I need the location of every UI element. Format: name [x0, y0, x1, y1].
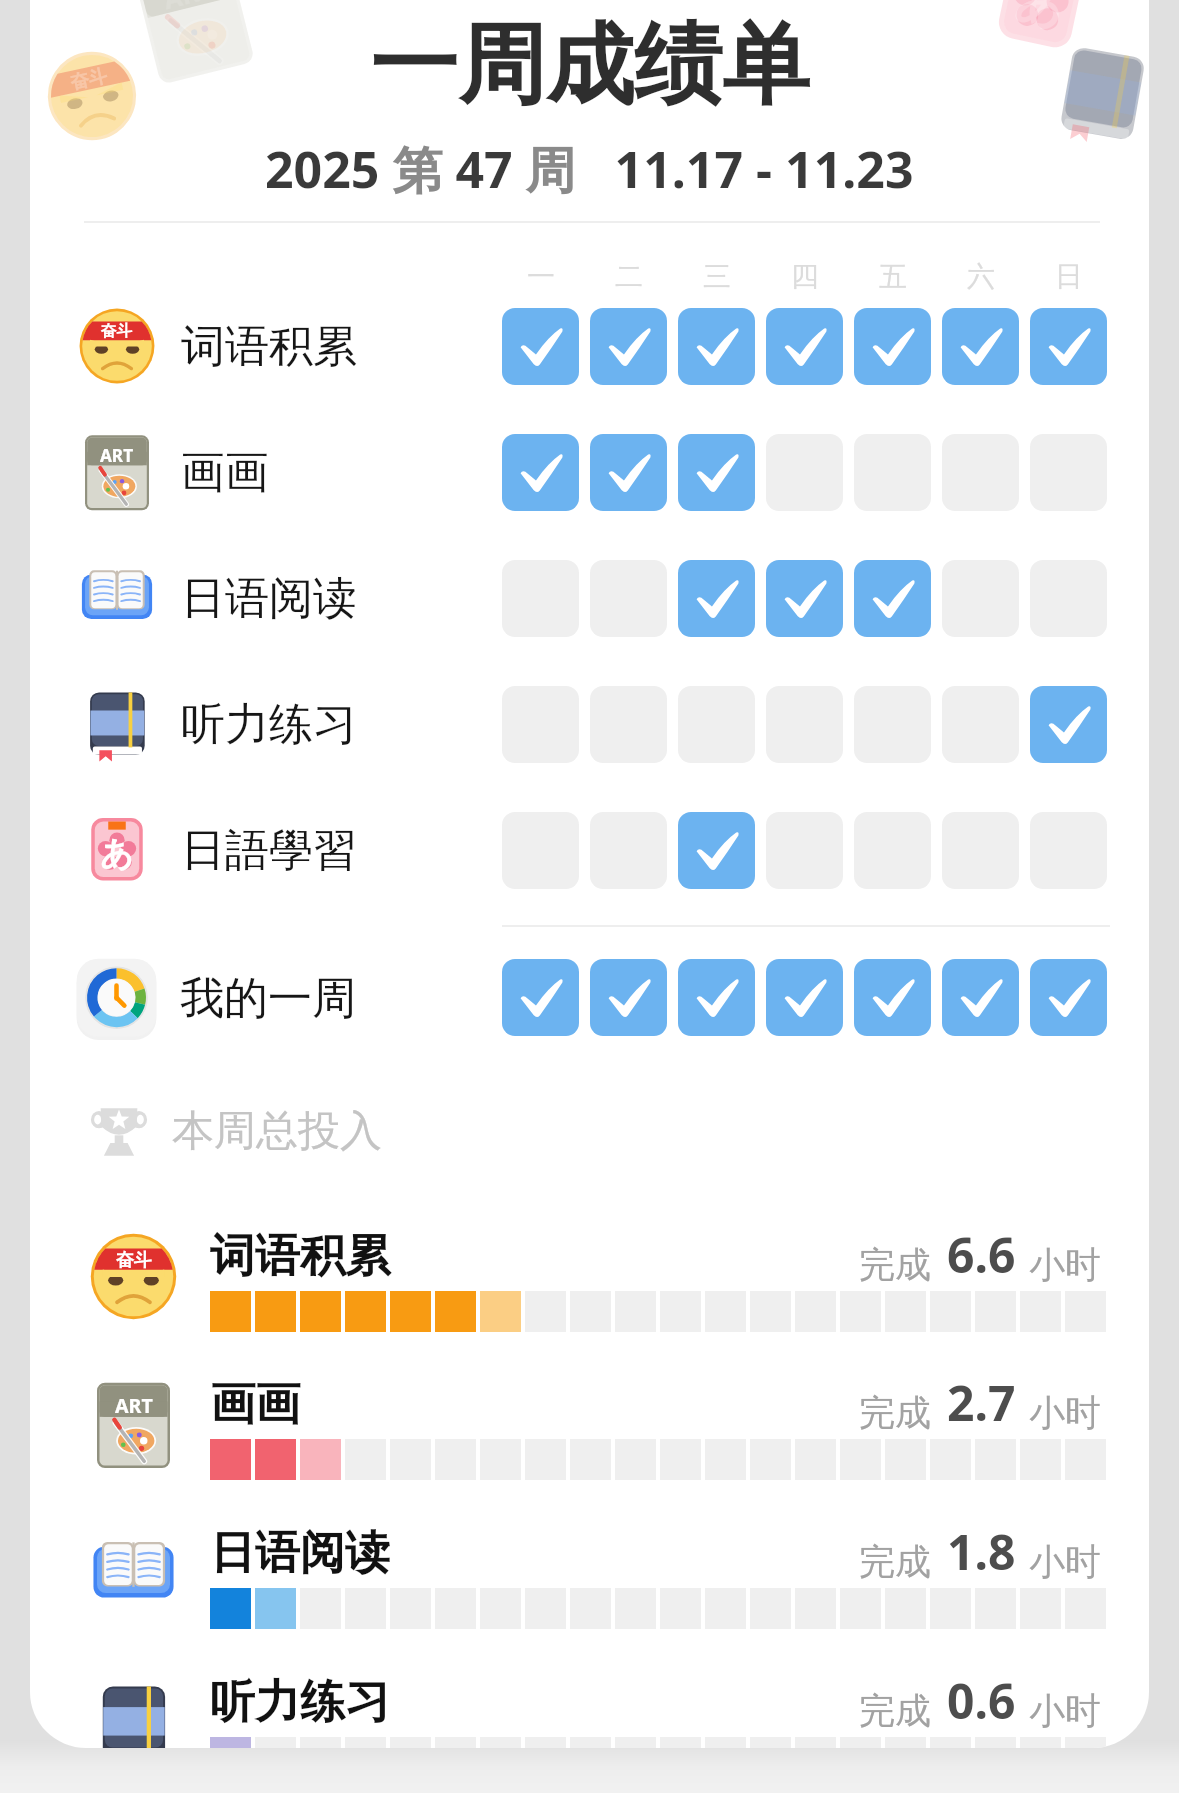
button[interactable]: 听力练习 完成 0.6 小时 [78, 1663, 1131, 1748]
button[interactable]: Completed [678, 308, 755, 385]
button[interactable]: Completed [1030, 959, 1107, 1036]
staticText: ART [115, 1392, 153, 1419]
button[interactable]: Completed [854, 959, 931, 1036]
staticText: 完成 [859, 1539, 931, 1584]
button[interactable]: Completed [766, 959, 843, 1036]
button[interactable]: 画画 完成 2.7 小时 [78, 1365, 1131, 1497]
staticText: ART [160, 0, 217, 16]
button[interactable]: 词语积累 [30, 283, 1149, 409]
button[interactable]: Completed [590, 959, 667, 1036]
staticText: 词语积累 [181, 319, 357, 374]
staticText: 2.7 [947, 1370, 1016, 1435]
staticText: 完成 [859, 1688, 931, 1733]
staticText: 完成 [859, 1390, 931, 1435]
button[interactable]: Completed [942, 959, 1019, 1036]
button[interactable]: 画画 [30, 409, 1149, 535]
button[interactable]: Completed [502, 308, 579, 385]
staticText: 奋斗 [116, 1249, 152, 1271]
staticText: あ [100, 833, 134, 874]
button[interactable]: Completed [854, 308, 931, 385]
staticText: 画画 [181, 445, 269, 500]
button[interactable]: Completed [502, 434, 579, 511]
staticText: 小时 [1029, 1390, 1101, 1435]
staticText: 我的一周 [180, 971, 356, 1026]
staticText: 词语积累 [210, 1228, 390, 1285]
button[interactable]: Completed [678, 959, 755, 1036]
staticText: 听力练习 [181, 697, 357, 752]
button[interactable]: 日语阅读 [30, 535, 1149, 661]
button[interactable]: Completed [678, 434, 755, 511]
button[interactable]: Completed [1030, 308, 1107, 385]
button[interactable]: 本周总投入 [86, 1098, 382, 1164]
staticText: 日語學習 [181, 823, 357, 878]
staticText: 小时 [1029, 1242, 1101, 1287]
staticText: 一 [527, 259, 555, 294]
staticText: 听力练习 [210, 1674, 390, 1731]
staticText: 小时 [1029, 1688, 1101, 1733]
staticText: 四 [791, 259, 819, 294]
staticText: 画画 [210, 1376, 300, 1433]
button[interactable]: 日语阅读 完成 1.8 小时 [78, 1514, 1131, 1646]
staticText: 三 [703, 259, 731, 294]
staticText: 1.8 [947, 1519, 1016, 1584]
button[interactable]: Completed [590, 434, 667, 511]
button[interactable]: Completed [766, 308, 843, 385]
staticText: 完成 [859, 1242, 931, 1287]
staticText: 6.6 [947, 1222, 1016, 1287]
staticText: 奋斗 [101, 321, 133, 341]
button[interactable]: Completed [1030, 686, 1107, 763]
button[interactable]: Completed [678, 560, 755, 637]
staticText: 日语阅读 [181, 571, 357, 626]
button[interactable]: Completed [590, 308, 667, 385]
staticText: 0.6 [947, 1668, 1016, 1733]
staticText: 日语阅读 [210, 1525, 390, 1582]
staticText: 二 [615, 259, 643, 294]
staticText: 一周成绩单 [370, 10, 810, 121]
staticText: 五 [879, 259, 907, 294]
staticText: ART [100, 444, 134, 467]
button[interactable]: 听力练习 [30, 661, 1149, 787]
button[interactable]: 我的一周 [30, 935, 1149, 1061]
staticText: 日 [1055, 259, 1083, 294]
button[interactable]: Completed [678, 812, 755, 889]
staticText: 小时 [1029, 1539, 1101, 1584]
staticText: 奋斗 [68, 64, 109, 94]
button[interactable]: Completed [854, 560, 931, 637]
button[interactable]: 词语积累 完成 6.6 小时 [78, 1217, 1131, 1349]
button[interactable]: Completed [942, 308, 1019, 385]
staticText: 2025 第 47 周 11.17 - 11.23 [265, 135, 914, 203]
button[interactable]: Completed [766, 560, 843, 637]
staticText: あ [1010, 0, 1071, 38]
button[interactable]: 日語學習 [30, 787, 1149, 913]
button[interactable]: Completed [502, 959, 579, 1036]
staticText: 六 [967, 259, 995, 294]
staticText: 本周总投入 [172, 1105, 382, 1158]
